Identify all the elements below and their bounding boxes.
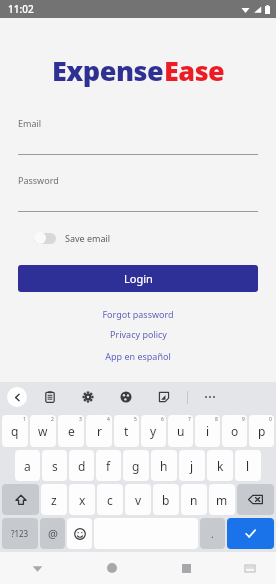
button[interactable]: @ <box>40 518 65 549</box>
button[interactable]: m <box>209 484 235 515</box>
button[interactable]: Emoji <box>67 518 92 549</box>
button[interactable]: Clipboard <box>41 388 59 406</box>
staticText: j <box>190 458 194 474</box>
button[interactable]: k <box>207 450 233 481</box>
button[interactable]: g <box>123 450 149 481</box>
staticText: t <box>124 423 129 439</box>
button[interactable]: Forgot password <box>0 308 276 320</box>
button[interactable]: 8 <box>195 415 220 447</box>
button[interactable]: 6 <box>141 415 166 447</box>
button[interactable]: h <box>151 450 177 481</box>
staticText: x <box>79 492 86 508</box>
staticText: App en español <box>105 350 171 362</box>
button[interactable]: Save email <box>34 232 276 244</box>
staticText: . <box>211 527 214 541</box>
button[interactable]: 2 <box>30 415 56 447</box>
staticText: 7 <box>188 416 191 423</box>
button[interactable]: Home <box>74 552 149 584</box>
button[interactable]: a <box>15 450 40 481</box>
button[interactable]: l <box>235 450 261 481</box>
button[interactable]: n <box>181 484 207 515</box>
staticText: Login <box>124 271 153 286</box>
staticText: ?123 <box>11 528 29 539</box>
staticText: Ease <box>164 52 225 89</box>
staticText: d <box>78 458 86 474</box>
staticText: a <box>24 458 31 474</box>
button[interactable]: v <box>125 484 151 515</box>
staticText: b <box>162 492 170 508</box>
button[interactable]: 5 <box>114 415 139 447</box>
staticText: 1 <box>23 416 26 423</box>
button[interactable]: f <box>96 450 121 481</box>
staticText: y <box>150 423 157 439</box>
staticText: Expense <box>52 52 164 89</box>
staticText: u <box>177 423 185 439</box>
button[interactable]: Themes <box>117 388 135 406</box>
staticText: h <box>160 458 168 474</box>
staticText: 3 <box>79 416 82 423</box>
button[interactable]: Hide keyboard <box>0 552 74 584</box>
button[interactable]: . <box>200 518 225 549</box>
staticText: 11:02 <box>8 2 34 16</box>
staticText: r <box>97 423 102 439</box>
button[interactable]: Backspace <box>237 484 274 515</box>
staticText: f <box>106 458 111 474</box>
staticText: e <box>68 423 75 439</box>
staticText: q <box>11 423 19 439</box>
button[interactable]: More options <box>202 389 218 405</box>
button[interactable]: Stickers <box>155 388 173 406</box>
button[interactable]: Recent apps <box>149 552 224 584</box>
staticText: s <box>52 458 58 474</box>
staticText: o <box>231 423 239 439</box>
button[interactable]: App en español <box>0 350 276 362</box>
button[interactable]: 0 <box>249 415 274 447</box>
button[interactable]: b <box>153 484 179 515</box>
button[interactable]: c <box>97 484 123 515</box>
staticText: 2 <box>51 416 54 423</box>
staticText: @ <box>48 526 58 541</box>
staticText: 6 <box>161 416 164 423</box>
staticText: Password <box>18 174 59 186</box>
staticText: m <box>216 492 228 508</box>
button[interactable]: j <box>179 450 205 481</box>
button[interactable]: x <box>69 484 95 515</box>
staticText: n <box>190 492 198 508</box>
button[interactable]: 1 <box>2 415 28 447</box>
staticText: c <box>107 492 113 508</box>
staticText: 9 <box>242 416 245 423</box>
button[interactable]: z <box>41 484 67 515</box>
staticText: Forgot password <box>102 308 174 320</box>
staticText: p <box>258 423 266 439</box>
staticText: 4 <box>107 416 110 423</box>
staticText: 8 <box>215 416 218 423</box>
staticText: v <box>135 492 142 508</box>
button[interactable]: ?123 <box>2 518 38 549</box>
button[interactable]: Back <box>7 387 27 407</box>
button[interactable]: Privacy policy <box>0 328 276 340</box>
staticText: Save email <box>65 232 111 244</box>
staticText: g <box>132 458 140 474</box>
staticText: i <box>206 423 210 439</box>
button[interactable]: d <box>69 450 94 481</box>
staticText: l <box>246 458 250 474</box>
staticText: k <box>217 458 224 474</box>
staticText: w <box>38 423 48 439</box>
button[interactable]: 7 <box>168 415 193 447</box>
button[interactable]: 3 <box>58 415 84 447</box>
button[interactable]: s <box>42 450 67 481</box>
button[interactable]: 9 <box>222 415 247 447</box>
button[interactable]: Login <box>18 265 258 292</box>
staticText: 0 <box>269 416 272 423</box>
staticText: 5 <box>134 416 137 423</box>
button[interactable]: Shift <box>2 484 39 515</box>
staticText: z <box>51 492 57 508</box>
button[interactable]: 4 <box>86 415 112 447</box>
button[interactable]: Enter <box>227 518 274 549</box>
button[interactable]: Settings <box>79 388 97 406</box>
staticText: Privacy policy <box>110 328 167 340</box>
staticText: Email <box>18 117 42 129</box>
